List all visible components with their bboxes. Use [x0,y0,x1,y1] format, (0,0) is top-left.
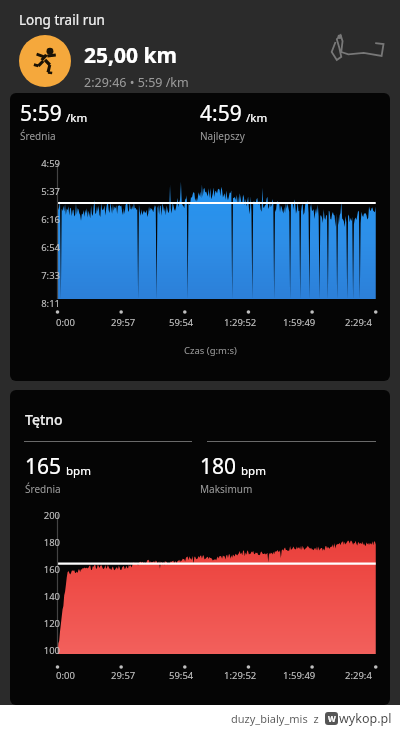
staticText: Maksimum [200,482,253,496]
staticText: 1:29:52 [224,669,257,682]
button[interactable]: Route map [324,28,388,68]
staticText: duzy_bialy_mis z [231,711,319,726]
staticText: 2:29:4 [345,669,372,682]
staticText: 1:59:49 [283,669,316,682]
staticText: 0:00 [56,669,75,682]
staticText: 29:57 [111,669,136,682]
button[interactable]: 5:59 [10,93,390,381]
button[interactable]: Long trail run [0,0,400,93]
button[interactable]: Running activity [19,35,71,87]
staticText: 6:16 [30,213,60,226]
staticText: 59:54 [169,669,194,682]
staticText: bpm [66,463,91,479]
staticText: Średnia [20,129,56,143]
staticText: 1:29:52 [224,316,257,329]
staticText: 2:29:4 [345,316,372,329]
staticText: 0:00 [56,316,75,329]
staticText: Long trail run [19,11,105,29]
staticText: 4:59 [200,99,242,128]
staticText: W [328,713,336,724]
staticText: 5:37 [30,185,60,198]
button[interactable]: Tętno [10,390,390,705]
staticText: 140 [28,590,60,603]
staticText: 29:57 [111,316,136,329]
staticText: Czas (g:m:s) [184,344,237,357]
staticText: 59:54 [169,316,194,329]
staticText: Średnia [25,482,61,496]
staticText: /km [66,110,88,126]
staticText: 1:59:49 [283,316,316,329]
staticText: 165 [25,452,62,481]
staticText: 4:59 [30,157,60,170]
staticText: 180 [28,536,60,549]
staticText: Najlepszy [200,129,245,143]
staticText: bpm [241,463,266,479]
staticText: 180 [200,452,237,481]
staticText: wykop.pl [339,710,392,727]
staticText: 2:29:46 • 5:59 /km [84,74,189,91]
staticText: 120 [28,617,60,630]
staticText: 6:54 [30,241,60,254]
staticText: Tętno [25,410,63,429]
staticText: 200 [28,509,60,522]
staticText: 5:59 [20,99,62,128]
staticText: 8:11 [30,297,60,310]
staticText: 100 [28,644,60,657]
staticText: 25,00 km [84,41,177,70]
staticText: /km [246,110,268,126]
staticText: 160 [28,563,60,576]
staticText: 7:33 [30,269,60,282]
